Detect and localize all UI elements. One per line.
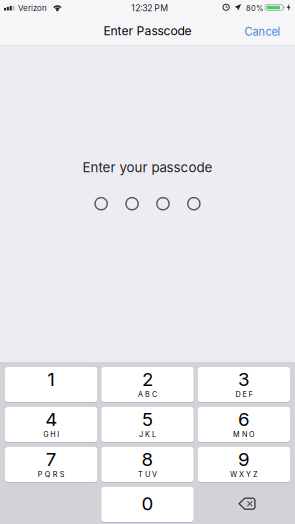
- staticText: 4: [45, 408, 57, 430]
- staticText: P Q R S: [38, 470, 65, 479]
- staticText: M N O: [233, 430, 255, 439]
- button[interactable]: Cancel: [236, 20, 288, 44]
- button[interactable]: 7: [5, 447, 97, 482]
- button[interactable]: 1: [5, 367, 97, 402]
- button[interactable]: 5: [101, 407, 194, 442]
- staticText: 8: [142, 448, 154, 470]
- button[interactable]: 3: [198, 367, 290, 402]
- staticText: Enter Passcode: [103, 23, 191, 38]
- staticText: G H I: [43, 430, 59, 439]
- button[interactable]: 6: [198, 407, 290, 442]
- button[interactable]: Delete: [198, 487, 290, 522]
- button[interactable]: 9: [198, 447, 290, 482]
- staticText: 7: [46, 448, 57, 470]
- staticText: 6: [238, 408, 250, 430]
- staticText: 3: [238, 368, 250, 390]
- button[interactable]: 8: [101, 447, 194, 482]
- staticText: T U V: [138, 470, 157, 479]
- staticText: 1: [47, 368, 55, 390]
- staticText: A B C: [138, 390, 157, 399]
- staticText: Cancel: [244, 25, 280, 38]
- staticText: Verizon: [18, 3, 47, 13]
- staticText: J K L: [139, 430, 156, 439]
- staticText: 5: [142, 408, 153, 430]
- staticText: D E F: [235, 390, 252, 399]
- button[interactable]: 4: [5, 407, 97, 442]
- staticText: 9: [238, 448, 250, 470]
- staticText: W X Y Z: [230, 470, 258, 479]
- staticText: 0: [142, 492, 154, 515]
- button[interactable]: 0: [101, 487, 194, 522]
- staticText: 12:32 PM: [131, 3, 168, 13]
- button[interactable]: 2: [101, 367, 194, 402]
- staticText: 80%: [246, 4, 263, 13]
- staticText: 2: [142, 368, 153, 390]
- staticText: Enter your passcode: [82, 159, 212, 175]
